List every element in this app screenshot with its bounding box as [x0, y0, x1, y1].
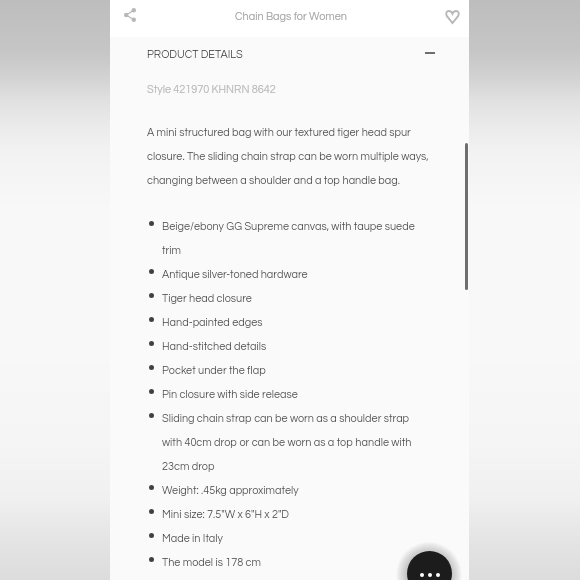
staticText: The model is 178 cm [162, 547, 430, 571]
button[interactable]: More options [407, 551, 452, 580]
button[interactable]: Share [110, 0, 151, 37]
staticText: Hand-painted edges [162, 307, 430, 331]
staticText: Hand-stitched details [162, 331, 430, 355]
staticText: PRODUCT DETAILS [147, 49, 243, 60]
staticText: Style 421970 KHNRN 8642 [147, 84, 276, 95]
staticText: Antique silver-toned hardware [162, 259, 430, 283]
staticText: Tiger head closure [162, 283, 430, 307]
staticText: Chain Bags for Women [235, 11, 347, 22]
staticText: Pin closure with side release [162, 379, 430, 403]
staticText: Pocket under the flap [162, 355, 430, 379]
staticText: Made in Italy [162, 523, 430, 547]
staticText: Weight: .45kg approximately [162, 475, 430, 499]
staticText: A mini structured bag with our textured … [147, 117, 444, 189]
button[interactable]: PRODUCT DETAILS [110, 37, 469, 71]
staticText: Sliding chain strap can be worn as a sho… [162, 403, 430, 475]
staticText: Mini size: 7.5"W x 6"H x 2"D [162, 499, 430, 523]
staticText: Beige/ebony GG Supreme canvas, with taup… [162, 211, 430, 259]
button[interactable]: Favorite [432, 0, 469, 37]
